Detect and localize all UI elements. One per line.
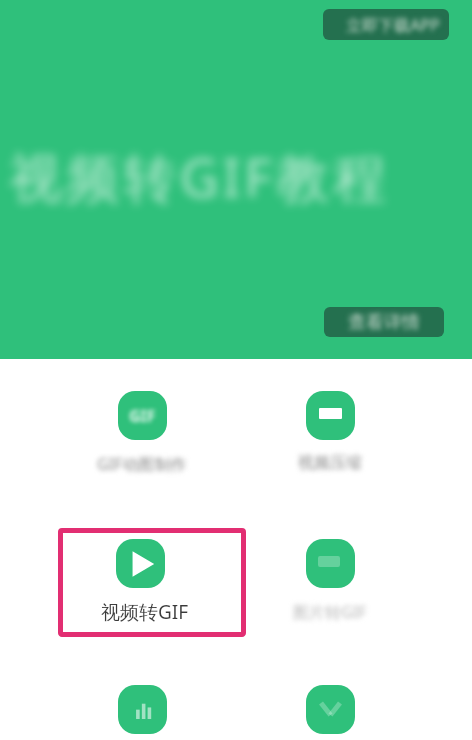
staticText: 视频转GIF教程 <box>9 140 391 212</box>
other: CROSS <box>306 685 355 734</box>
button[interactable]: RECT <box>279 385 381 477</box>
staticText: GIF <box>129 405 156 427</box>
staticText: 视频转GIF <box>101 599 189 625</box>
other: CHART <box>118 685 167 734</box>
button[interactable]: CROSS <box>279 679 381 739</box>
staticText: 立即下载APP <box>346 14 440 36</box>
staticText: 查看详情 <box>348 311 420 334</box>
staticText: GIF动图制作 <box>97 453 187 475</box>
button[interactable]: 视频转GIF <box>58 528 246 637</box>
button[interactable]: 立即下载APP <box>323 9 449 40</box>
button[interactable]: 查看详情 <box>324 307 444 337</box>
button[interactable]: CHART <box>91 679 193 739</box>
staticText: 图片转GIF <box>293 601 367 623</box>
other: RECT <box>306 391 355 440</box>
staticText: 视频压缩 <box>298 453 362 473</box>
other: BLOB <box>306 539 355 588</box>
other: GIF <box>118 391 167 440</box>
button[interactable]: BLOB <box>279 533 381 625</box>
button[interactable]: GIF <box>91 385 193 477</box>
